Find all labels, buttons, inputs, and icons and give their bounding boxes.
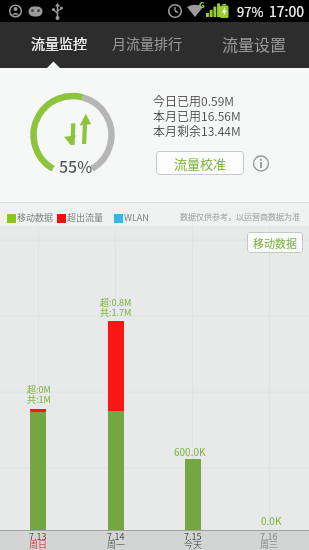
staticText: 超:0.8M	[100, 296, 132, 309]
staticText: G	[199, 0, 205, 11]
staticText: 97%	[237, 2, 264, 21]
staticText: 流量校准	[174, 154, 227, 173]
staticText: 超:0M	[27, 383, 51, 396]
staticText: 7.15	[184, 530, 202, 543]
staticText: 共:1M	[27, 393, 51, 406]
staticText: 0.0K	[261, 513, 282, 527]
staticText: 月流量排行	[112, 33, 182, 53]
staticText: 周三	[260, 538, 279, 550]
staticText: WLAN	[124, 211, 149, 224]
staticText: 7.16	[260, 530, 278, 543]
staticText: 本月剩余13.44M	[153, 122, 241, 139]
staticText: 今日已用0.59M	[153, 92, 235, 109]
staticText: 周一	[107, 538, 126, 550]
staticText: 今天	[184, 538, 203, 550]
staticText: 周日	[29, 538, 48, 550]
button[interactable]: 流量设置	[209, 22, 300, 64]
staticText: 7.14	[107, 530, 125, 543]
button[interactable]: 月流量排行	[102, 22, 192, 64]
staticText: 流量监控	[31, 33, 87, 53]
button[interactable]	[251, 153, 271, 173]
button[interactable]: 移动数据	[247, 232, 303, 253]
staticText: 7.13	[29, 530, 47, 543]
staticText: 共:1.7M	[100, 306, 132, 319]
staticText: 55%	[59, 154, 93, 177]
staticText: 移动数据	[253, 235, 297, 251]
staticText: 本月已用16.56M	[153, 107, 241, 124]
staticText: 移动数据	[17, 211, 54, 224]
staticText: 17:00	[269, 1, 304, 21]
staticText: 流量设置	[222, 32, 287, 55]
button[interactable]: 流量校准	[156, 151, 244, 175]
staticText: 600.0K	[174, 444, 206, 458]
staticText: 数据仅供参考，以运营商数据为准	[180, 211, 300, 223]
staticText: 超出流量	[67, 211, 104, 224]
button[interactable]: 流量监控	[14, 22, 104, 64]
